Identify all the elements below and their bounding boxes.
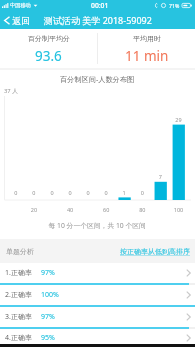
staticText: 4.正确率 — [5, 333, 32, 343]
staticText: 11 min — [125, 47, 169, 65]
button[interactable]: 2.正确率 — [0, 285, 195, 307]
staticText: 3.正确率 — [5, 312, 32, 322]
button[interactable]: 4.正确率 — [0, 329, 195, 347]
staticText: 按正确率从低到高排序 — [120, 247, 190, 256]
button[interactable]: 3.正确率 — [0, 307, 195, 329]
staticText: 2.正确率 — [5, 290, 32, 300]
button[interactable]: 按正确率从低到高排序 — [120, 247, 190, 256]
staticText: 平均用时 — [133, 34, 161, 43]
staticText: 71% — [169, 2, 180, 9]
staticText: 1.正确率 — [5, 268, 32, 278]
button[interactable]: 1.正确率 — [0, 263, 195, 285]
button[interactable]: 返回 — [0, 11, 34, 29]
staticText: 单题分析 — [6, 247, 34, 256]
staticText: 95% — [41, 333, 55, 343]
staticText: 93.6 — [35, 47, 62, 65]
staticText: 中国移动 — [10, 2, 31, 9]
staticText: 00:01 — [91, 1, 109, 10]
staticText: 返回 — [12, 15, 30, 26]
staticText: 测试活动 美学 2018-59092 — [44, 14, 152, 26]
staticText: 百分制平均分 — [28, 34, 70, 43]
staticText: 97% — [41, 268, 55, 278]
staticText: 97% — [41, 312, 55, 322]
staticText: 100% — [41, 290, 59, 300]
